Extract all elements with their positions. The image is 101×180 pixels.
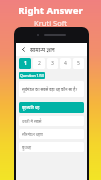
staticText: धरती में सबसे <box>22 119 42 124</box>
staticText: सामान्य ज्ञान <box>30 46 55 53</box>
staticText: 1 <box>24 60 27 67</box>
staticText: Question 1/50 <box>20 73 45 78</box>
staticText: बुधग्रह <box>22 145 32 150</box>
button[interactable]: सौरमंडल ग्रहण <box>19 129 84 139</box>
button[interactable]: Back <box>19 45 28 54</box>
staticText: 3 <box>51 60 54 67</box>
button[interactable]: धरती में सबसे <box>19 116 84 126</box>
staticText: सौरमंडल ग्रहण <box>22 132 43 137</box>
button[interactable]: 1 <box>19 58 31 69</box>
button[interactable]: 2 <box>33 58 45 69</box>
button[interactable]: 5 <box>73 58 84 69</box>
staticText: Right Answer <box>18 4 83 17</box>
button[interactable]: 3 <box>47 58 58 69</box>
staticText: 5 <box>77 60 80 67</box>
button[interactable]: बृहस्पति ग्रह <box>19 102 84 113</box>
button[interactable]: Question 1/50 <box>19 72 45 79</box>
staticText: बृहस्पति ग्रह <box>22 105 40 110</box>
staticText: सूर्यमंडल का सबसे बड़ा ग्रह कौन सा है? <box>22 87 78 92</box>
button[interactable]: 4 <box>60 58 71 69</box>
staticText: 2 <box>38 60 41 67</box>
staticText: Kruti Soft <box>34 18 67 28</box>
button[interactable]: बुधग्रह <box>19 142 84 152</box>
staticText: 4 <box>64 60 67 67</box>
